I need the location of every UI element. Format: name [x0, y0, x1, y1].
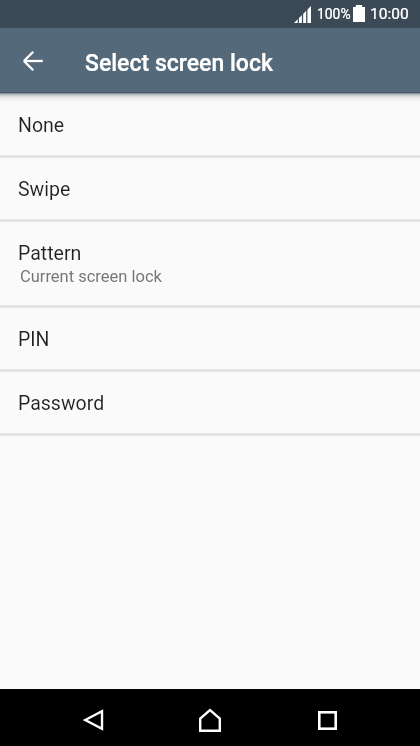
- staticText: 100%: [317, 6, 351, 22]
- staticText: Swipe: [18, 178, 71, 201]
- staticText: Select screen lock: [85, 50, 273, 77]
- button[interactable]: Home: [186, 696, 234, 744]
- staticText: Current screen lock: [20, 267, 162, 286]
- button[interactable]: Recent apps: [303, 696, 351, 744]
- button[interactable]: None: [0, 92, 420, 156]
- staticText: Password: [18, 392, 105, 415]
- button[interactable]: PIN: [0, 307, 420, 370]
- button[interactable]: Password: [0, 371, 420, 434]
- button[interactable]: Back: [69, 696, 117, 744]
- staticText: Pattern: [18, 242, 82, 265]
- button[interactable]: Pattern: [0, 221, 420, 306]
- button[interactable]: Swipe: [0, 157, 420, 220]
- button[interactable]: Navigate up: [10, 36, 58, 84]
- staticText: None: [18, 114, 65, 137]
- staticText: PIN: [18, 328, 50, 351]
- staticText: 10:00: [370, 5, 409, 23]
